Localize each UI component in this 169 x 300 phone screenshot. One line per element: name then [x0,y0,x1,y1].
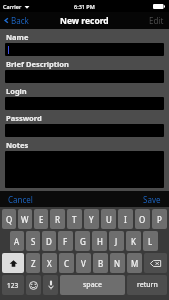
button[interactable]: W [18,209,32,229]
staticText: F [63,236,68,247]
staticText: D [46,236,52,247]
staticText: B [98,258,104,269]
staticText: Password [6,113,42,123]
staticText: Back [11,15,29,26]
button[interactable]: Z [26,253,40,273]
staticText: H [97,236,103,247]
button[interactable]: Emoji [26,275,41,295]
button[interactable]: K [126,231,141,251]
button[interactable]: B [93,253,108,273]
staticText: Brief Description [6,59,69,69]
button[interactable]: Q [2,209,16,229]
staticText: 123 [7,281,19,290]
button[interactable]: O [135,209,150,229]
button[interactable]: F [58,231,73,251]
staticText: O [139,214,146,225]
button[interactable]: P [152,209,167,229]
staticText: L [148,236,153,247]
button[interactable]: return [127,275,167,295]
button[interactable]: H [92,231,107,251]
button[interactable]: A [10,231,24,251]
staticText: New record [60,15,109,27]
staticText: space [83,280,102,290]
staticText: Z [31,258,36,269]
staticText: W [21,214,29,225]
button[interactable]: C [59,253,74,273]
staticText: I [124,214,127,225]
button[interactable]: G [75,231,90,251]
button[interactable]: J [109,231,124,251]
staticText: G [80,236,86,247]
staticText: X [47,258,52,269]
staticText: V [81,258,86,269]
button[interactable]: Edit [143,12,169,29]
staticText: return [137,280,158,290]
button[interactable]: Save [137,191,169,207]
staticText: Y [89,214,94,225]
button[interactable]: S [26,231,40,251]
staticText: M [131,258,139,269]
button[interactable]: E [34,209,48,229]
button[interactable]: R [50,209,65,229]
staticText: T [72,214,77,225]
staticText: Notes [6,140,29,150]
staticText: 6:31 PM [74,3,95,10]
button[interactable]: T [67,209,82,229]
button[interactable]: 123 [2,275,24,295]
staticText: A [14,236,20,247]
staticText: R [55,214,60,225]
button[interactable]: Shift [2,253,24,273]
staticText: S [31,236,36,247]
staticText: K [131,236,136,247]
button[interactable]: space [60,275,125,295]
button[interactable] [5,43,164,56]
staticText: U [106,214,112,225]
staticText: N [114,258,121,269]
staticText: Name [6,32,29,42]
button[interactable]: Back [0,13,33,28]
button[interactable]: Dictate [43,275,58,295]
staticText: J [115,236,118,247]
button[interactable]: Cancel [0,191,39,207]
staticText: C [64,258,70,269]
button[interactable]: N [110,253,125,273]
staticText: P [157,214,162,225]
button[interactable]: D [42,231,56,251]
button[interactable]: U [101,209,116,229]
button[interactable]: X [42,253,57,273]
staticText: Login [6,86,27,96]
button[interactable]: Y [84,209,99,229]
button[interactable]: M [127,253,142,273]
button[interactable]: I [118,209,133,229]
staticText: Q [6,214,13,225]
staticText: Carrier [3,3,22,10]
button[interactable]: Delete [144,253,167,273]
button[interactable]: L [143,231,158,251]
button[interactable]: V [76,253,91,273]
staticText: E [39,214,44,225]
